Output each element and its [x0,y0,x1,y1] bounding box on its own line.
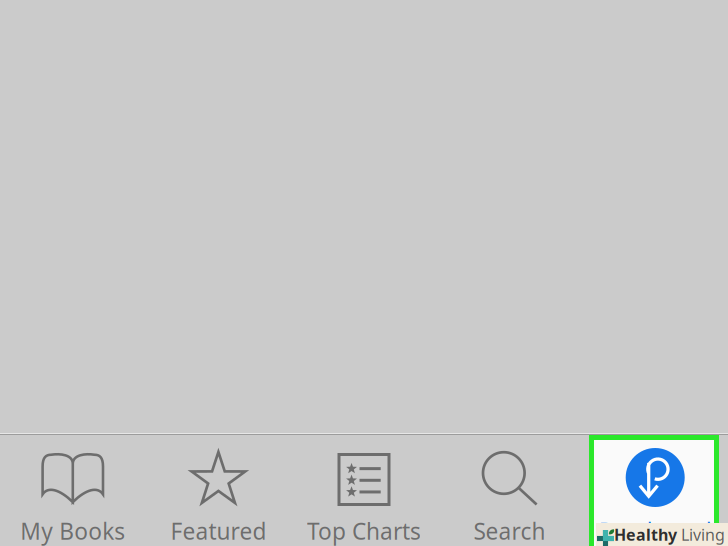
staticText: Featured [170,516,266,546]
button[interactable]: Top Charts [291,435,437,546]
staticText: Top Charts [307,516,421,546]
staticText: Search [474,516,546,546]
staticText: Purchased [599,516,712,546]
button[interactable]: My Books [0,435,146,546]
button[interactable]: Purchased [582,435,728,546]
staticText: Living [677,524,725,545]
staticText: My Books [20,516,125,546]
button[interactable]: Featured [146,435,291,546]
staticText: Healthy [614,524,677,545]
button[interactable]: Search [437,435,582,546]
